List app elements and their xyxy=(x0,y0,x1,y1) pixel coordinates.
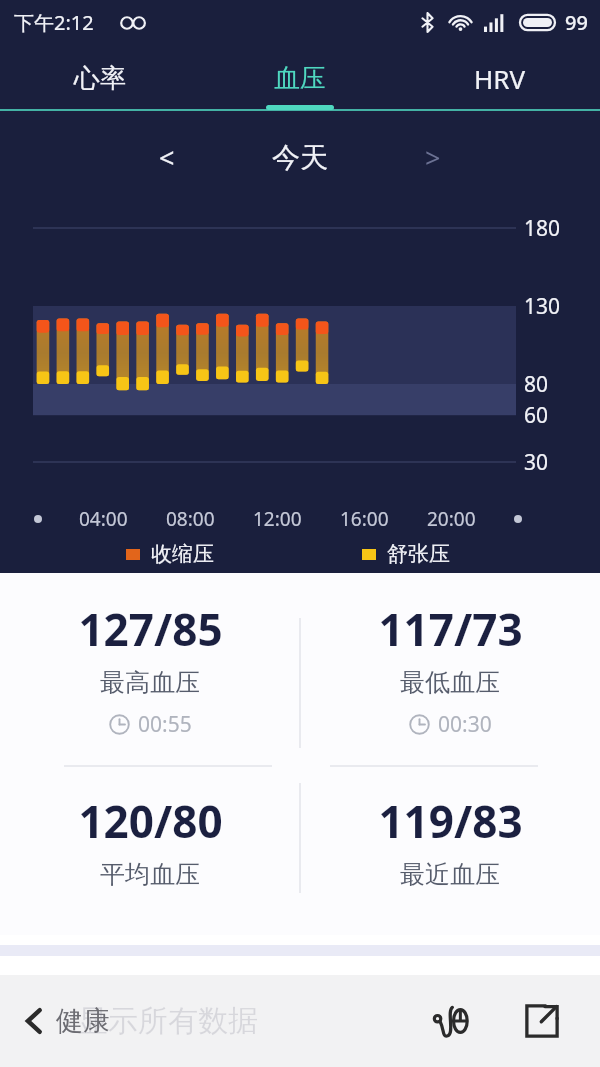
button[interactable]: HRV xyxy=(400,45,600,111)
staticText: 下午2:12 xyxy=(14,9,94,36)
staticText: 119/83 xyxy=(378,791,523,851)
staticText: 08:00 xyxy=(166,506,215,532)
button[interactable]: 117/73 xyxy=(300,573,600,765)
staticText: 20:00 xyxy=(427,506,476,532)
staticText: 平均血压 xyxy=(100,859,200,890)
staticText: 健康 xyxy=(56,1004,110,1038)
staticText: 130 xyxy=(524,292,561,321)
staticText: 00:30 xyxy=(438,710,492,739)
button[interactable]: Next day xyxy=(409,133,457,181)
staticText: 12:00 xyxy=(253,506,302,532)
button[interactable]: 119/83 xyxy=(300,765,600,935)
button[interactable]: 127/85 xyxy=(0,573,300,765)
staticText: < xyxy=(159,139,175,176)
staticText: 80 xyxy=(524,370,549,399)
button[interactable]: Share xyxy=(514,993,570,1049)
staticText: 收缩压 xyxy=(151,541,214,567)
staticText: 180 xyxy=(524,214,561,243)
staticText: 99 xyxy=(565,9,588,36)
button[interactable]: Previous day xyxy=(143,133,191,181)
staticText: 127/85 xyxy=(78,599,223,659)
button[interactable]: 心率 xyxy=(0,45,200,111)
button[interactable]: 血压 xyxy=(200,45,400,111)
staticText: 120/80 xyxy=(78,791,223,851)
staticText: 30 xyxy=(524,448,549,477)
staticText: 60 xyxy=(524,401,549,430)
staticText: 04:00 xyxy=(79,506,128,532)
button[interactable]: Measure blood pressure xyxy=(424,993,480,1049)
staticText: 最近血压 xyxy=(400,859,500,890)
staticText: 最高血压 xyxy=(100,667,200,698)
staticText: 16:00 xyxy=(340,506,389,532)
staticText: 舒张压 xyxy=(387,541,450,567)
staticText: HRV xyxy=(474,61,526,96)
staticText: 心率 xyxy=(74,62,126,95)
staticText: 显示所有数据 xyxy=(78,1002,258,1040)
button[interactable]: 120/80 xyxy=(0,765,300,935)
other: Back xyxy=(16,1003,52,1039)
staticText: > xyxy=(425,139,441,176)
staticText: 最低血压 xyxy=(400,667,500,698)
staticText: 今天 xyxy=(272,140,328,175)
staticText: 117/73 xyxy=(378,599,523,659)
staticText: 血压 xyxy=(274,62,326,95)
button[interactable]: Back xyxy=(16,1003,110,1039)
staticText: 00:55 xyxy=(138,710,192,739)
